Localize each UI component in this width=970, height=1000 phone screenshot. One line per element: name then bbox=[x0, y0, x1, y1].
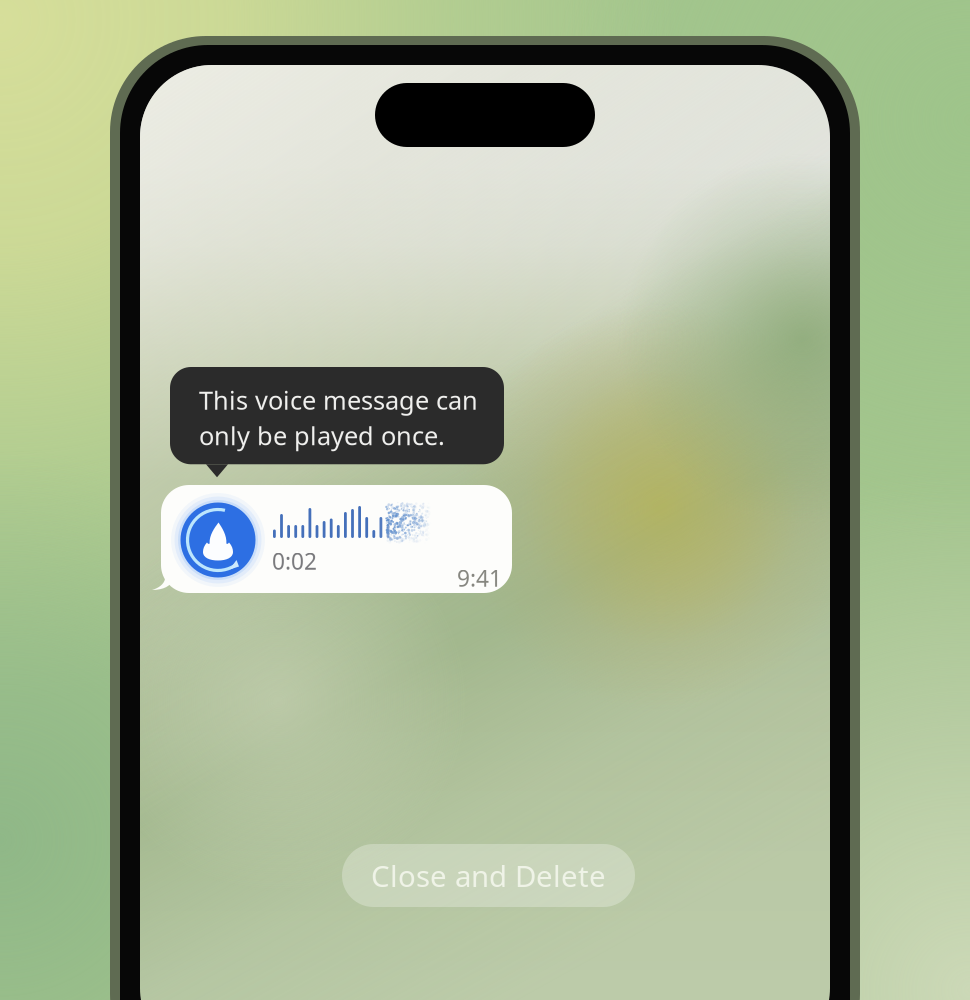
button[interactable]: Play view-once voice message, 0:02 bbox=[161, 485, 512, 593]
staticText: only be played once. bbox=[199, 419, 445, 452]
button[interactable]: Close and Delete bbox=[342, 844, 635, 907]
staticText: 9:41 bbox=[457, 563, 502, 593]
staticText: This voice message can bbox=[199, 383, 478, 417]
staticText: 0:02 bbox=[272, 546, 317, 576]
staticText: Close and Delete bbox=[371, 856, 606, 895]
